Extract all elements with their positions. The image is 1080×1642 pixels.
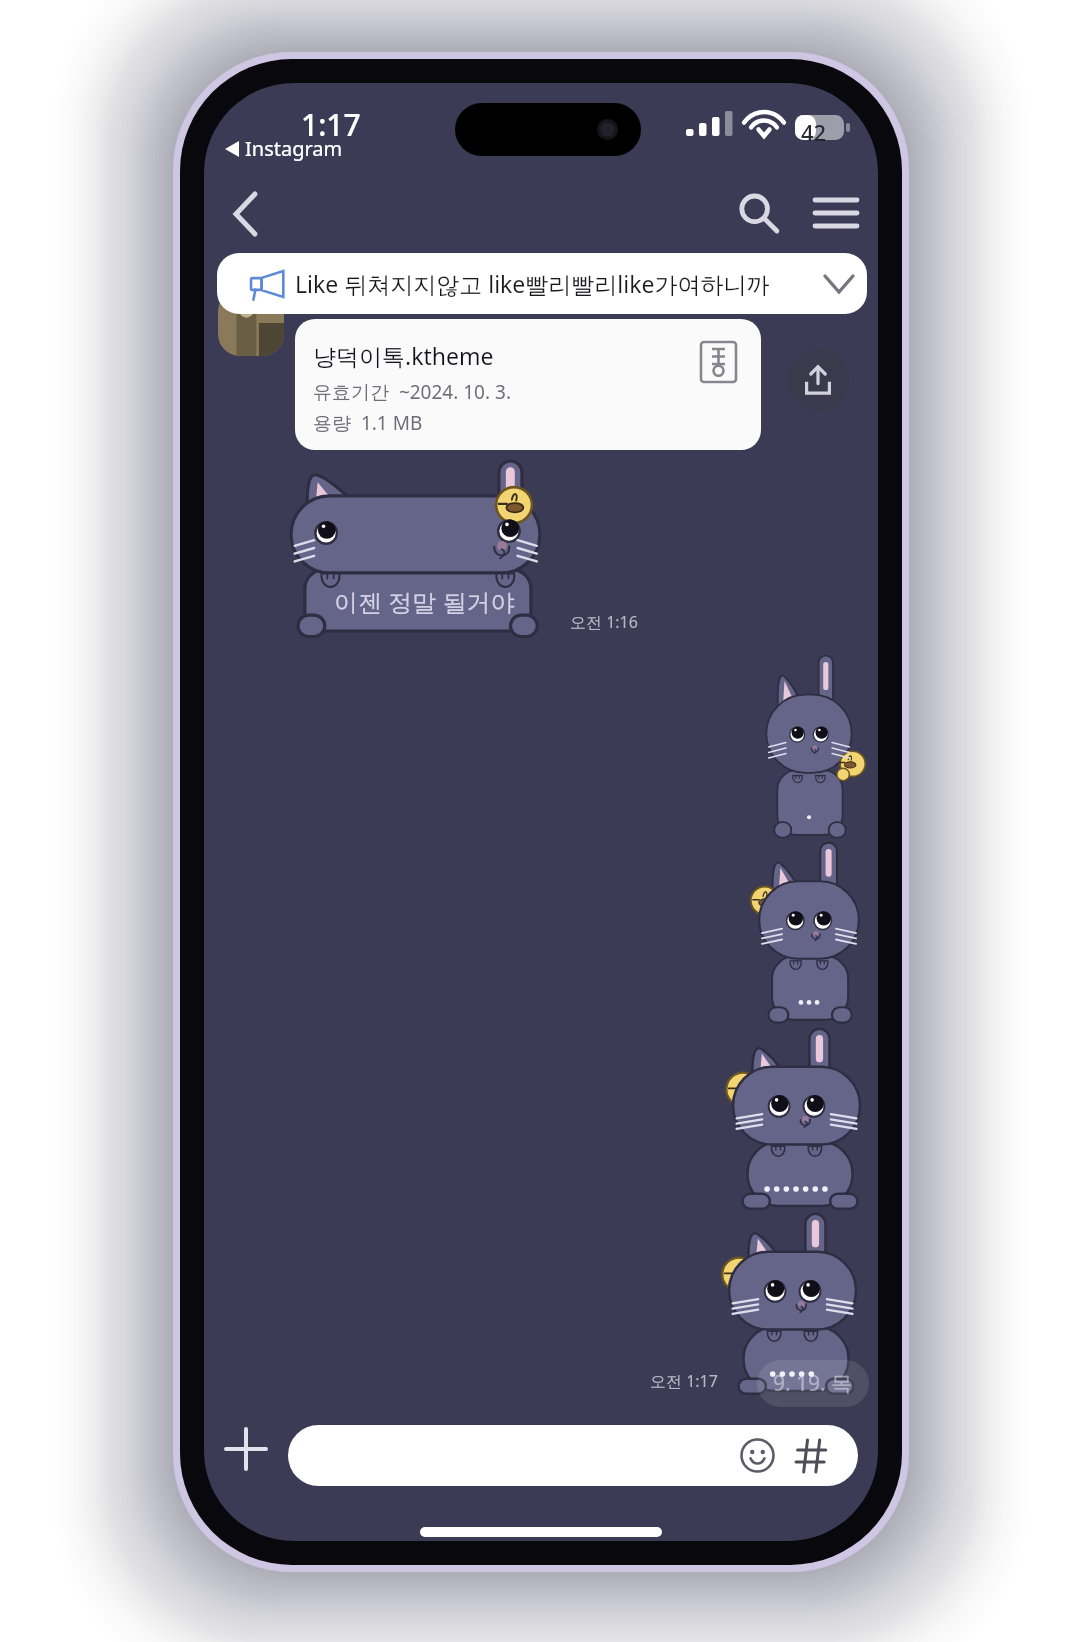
button[interactable]: 냥덕이톡.ktheme — [295, 319, 761, 450]
button[interactable]: Like 뒤쳐지지않고 like빨리빨리like가여하니까 — [217, 253, 867, 314]
staticText: 42 — [801, 117, 827, 147]
staticText: 9. 19. 목 — [773, 1369, 853, 1398]
button[interactable]: Search — [722, 177, 794, 249]
staticText: Like 뒤쳐지지않고 like빨리빨리like가여하니까 — [295, 268, 770, 299]
staticText: 1:17 — [301, 104, 361, 145]
staticText: Instagram — [245, 135, 343, 162]
staticText: 유효기간 ~2024. 10. 3. — [313, 379, 511, 405]
button[interactable]: Menu — [800, 177, 872, 249]
button[interactable] — [288, 1425, 858, 1486]
button[interactable]: Share — [787, 349, 849, 411]
button[interactable]: Add attachment — [212, 1415, 280, 1483]
staticText: 이젠 정말 될거야 — [334, 585, 515, 618]
staticText: 용량 1.1 MB — [313, 410, 423, 436]
staticText: 오전 1:17 — [650, 1370, 718, 1392]
button[interactable]: Back — [210, 179, 280, 249]
staticText: 냥덕이톡.ktheme — [313, 340, 494, 371]
staticText: 오전 1:16 — [570, 611, 638, 633]
